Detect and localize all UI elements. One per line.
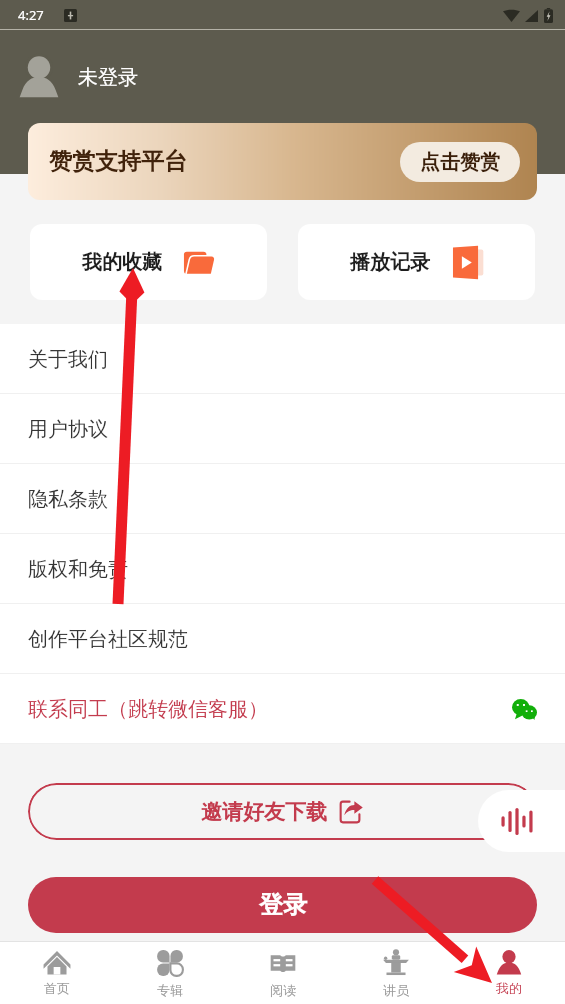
button[interactable]: 联系同工（跳转微信客服） [0,674,565,744]
staticText: 专辑 [157,982,183,998]
button[interactable]: 用户协议 [0,394,565,464]
staticText: 关于我们 [28,347,108,372]
staticText: 隐私条款 [28,487,108,512]
button[interactable]: 隐私条款 [0,464,565,534]
button[interactable]: 邀请好友下载 [28,783,537,840]
staticText: 用户协议 [28,417,108,442]
staticText: 点击赞赏 [420,150,500,175]
staticText: 创作平台社区规范 [28,627,188,652]
staticText: 版权和免责 [28,557,128,582]
staticText: 我的收藏 [82,250,162,275]
button[interactable]: 点击赞赏 [400,142,520,182]
staticText: 阅读 [270,982,296,998]
button[interactable]: 赞赏支持平台 [28,123,537,200]
button[interactable]: Audio player [478,790,565,852]
staticText: 4:27 [18,6,44,24]
button[interactable]: 我的收藏 [30,224,267,300]
staticText: 赞赏支持平台 [49,147,187,176]
button[interactable]: 阅读 [226,942,339,1004]
staticText: 讲员 [383,982,409,998]
staticText: 我的 [496,980,522,996]
button[interactable]: 专辑 [113,942,226,1004]
button[interactable]: 登录 [28,877,537,933]
staticText: 联系同工（跳转微信客服） [28,697,268,722]
button[interactable]: 讲员 [339,942,452,1004]
button[interactable]: 首页 [0,942,113,1004]
button[interactable]: 创作平台社区规范 [0,604,565,674]
button[interactable]: 关于我们 [0,324,565,394]
button[interactable]: 播放记录 [298,224,535,300]
button[interactable]: 版权和免责 [0,534,565,604]
staticText: 播放记录 [350,250,430,275]
staticText: 未登录 [78,65,138,90]
staticText: 邀请好友下载 [201,799,327,825]
button[interactable]: 我的 [452,942,565,1004]
button[interactable]: 未登录 [0,48,565,106]
staticText: 首页 [44,980,70,996]
staticText: 登录 [259,890,307,920]
